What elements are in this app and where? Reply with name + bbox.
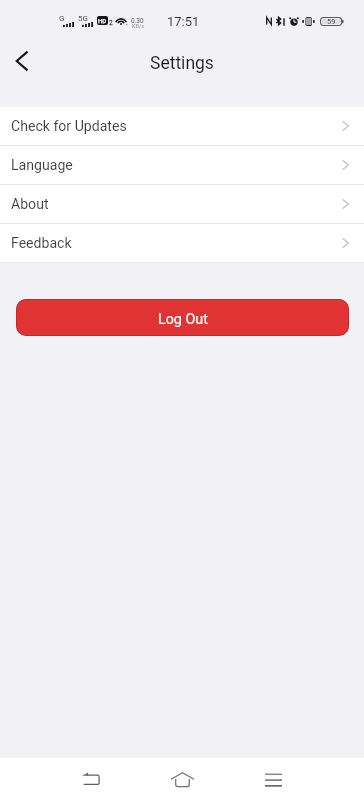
staticText: 59 — [327, 17, 336, 26]
staticText: Feedback — [11, 235, 72, 252]
staticText: 0.30 — [131, 17, 144, 25]
staticText: HD — [98, 17, 107, 24]
staticText: G — [59, 14, 65, 23]
staticText: 2 — [109, 19, 113, 27]
button[interactable]: Check for Updates — [0, 107, 364, 145]
button[interactable]: Log Out — [16, 299, 349, 336]
button[interactable]: About — [0, 185, 364, 223]
staticText: Language — [11, 157, 73, 174]
staticText: 17:51 — [167, 14, 200, 29]
button[interactable]: Language — [0, 146, 364, 184]
button[interactable]: Back — [0, 39, 44, 83]
staticText: About — [11, 196, 49, 213]
button[interactable]: Back — [68, 758, 113, 800]
staticText: Log Out — [158, 311, 208, 328]
staticText: 5G — [78, 14, 88, 23]
button[interactable]: Menu — [251, 758, 296, 800]
staticText: Settings — [150, 53, 214, 74]
button[interactable]: Feedback — [0, 224, 364, 262]
staticText: KB/s — [132, 23, 144, 29]
staticText: Check for Updates — [11, 118, 127, 135]
button[interactable]: Home — [160, 758, 205, 800]
